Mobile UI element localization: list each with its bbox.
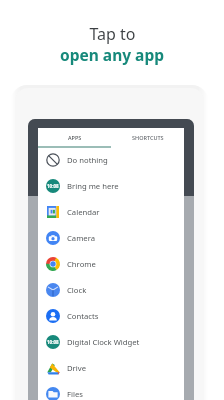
button[interactable]: 10:08: [38, 329, 184, 355]
button[interactable]: Do nothing: [38, 147, 184, 173]
staticText: Contacts: [67, 311, 99, 321]
staticText: Calendar: [67, 207, 100, 217]
button[interactable]: Drive: [38, 355, 184, 381]
staticText: SHORTCUTS: [132, 134, 164, 141]
staticText: APPS: [68, 134, 82, 141]
button[interactable]: Camera: [38, 225, 184, 251]
staticText: Do nothing: [67, 155, 108, 165]
button[interactable]: Contacts: [38, 303, 184, 329]
staticText: Clock: [67, 285, 87, 295]
button[interactable]: Clock: [38, 277, 184, 303]
staticText: Bring me here: [67, 181, 119, 191]
staticText: Digital Clock Widget: [67, 337, 140, 347]
staticText: Camera: [67, 233, 96, 243]
staticText: Chrome: [67, 259, 96, 269]
staticText: Drive: [67, 363, 87, 373]
staticText: Tap to: [89, 23, 136, 45]
staticText: 10:08: [47, 339, 59, 345]
staticText: 10:08: [47, 183, 59, 189]
staticText: open any app: [60, 44, 164, 65]
button[interactable]: APPS: [38, 128, 111, 146]
button[interactable]: Chrome: [38, 251, 184, 277]
button[interactable]: Calendar: [38, 199, 184, 225]
staticText: Files: [67, 389, 83, 399]
button[interactable]: Files: [38, 381, 184, 400]
button[interactable]: SHORTCUTS: [111, 128, 184, 146]
button[interactable]: 10:08: [38, 173, 184, 199]
